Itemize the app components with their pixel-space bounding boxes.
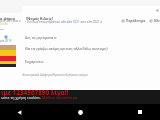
button[interactable]: Ηλεκτρ — [148, 18, 160, 24]
staticText: κλπ κλπ — [61, 20, 72, 24]
staticText: Παράδειγμα — [126, 19, 146, 23]
staticText: Ευχαριστώ — [25, 59, 44, 64]
staticText: Μάθετε περισσότερα. — [42, 95, 78, 100]
button[interactable]: ιμε 1234567890 λίγα!! — [0, 90, 160, 104]
staticText: 2021 απο κλπ 2021 σ — [72, 20, 103, 24]
staticText: ιδιοκτησιακά Διάφορα θέματα συζητήσεων α… — [22, 73, 88, 77]
button[interactable]: Back — [10, 104, 29, 120]
staticText: Ηλεκτρ — [154, 19, 160, 23]
button[interactable]: Παράδειγμα — [120, 18, 147, 24]
staticText: ρία 2019 — [0, 39, 12, 43]
staticText: α ψάρια — [0, 16, 15, 21]
button[interactable]: Recent apps — [130, 104, 149, 120]
staticText: Θα τα γράψω ακόμη κριτικη αλλα θελω συντ… — [25, 46, 108, 51]
staticText: ωστε τη χρήση cookies. — [1, 95, 42, 100]
button[interactable]: Home — [70, 104, 90, 120]
staticText: Δες τα μηνύματα σ — [25, 35, 57, 40]
staticText: [Νομός Κιλκίς] — [26, 16, 53, 21]
staticText: ρείς, δεν είπαν ο — [0, 19, 21, 23]
staticText: ανω — [0, 28, 5, 31]
staticText: • Εντελώς επαγγελματικά — [25, 20, 61, 24]
staticText: ιμε 1234567890 λίγα!! — [1, 88, 69, 97]
